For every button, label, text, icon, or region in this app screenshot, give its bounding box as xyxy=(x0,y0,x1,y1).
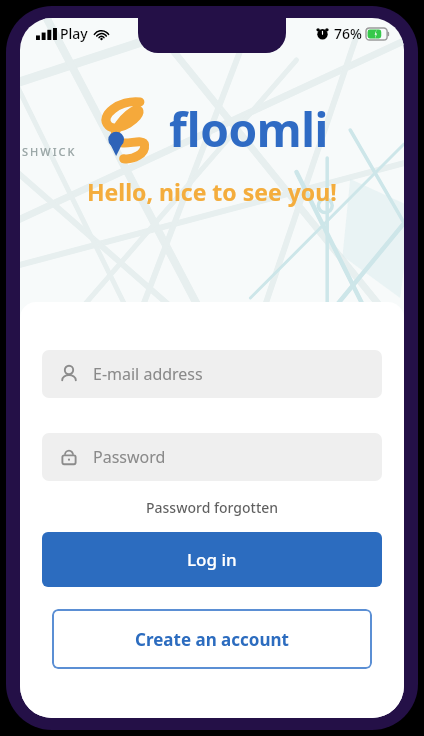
staticText: Hello, nice to see you! xyxy=(87,176,337,207)
button[interactable]: Log in xyxy=(42,532,382,587)
staticText: 76% xyxy=(334,24,362,43)
button[interactable]: Password xyxy=(42,433,382,481)
staticText: E-mail address xyxy=(93,363,203,385)
button[interactable]: Create an account xyxy=(52,609,372,669)
staticText: SHWICK xyxy=(22,144,77,159)
staticText: Password xyxy=(93,446,166,468)
staticText: Create an account xyxy=(135,628,289,651)
staticText: Password forgotten xyxy=(146,498,279,517)
staticText: Play xyxy=(60,24,88,43)
button[interactable]: Password forgotten xyxy=(42,494,382,521)
button[interactable]: E-mail address xyxy=(42,350,382,398)
staticText: floomli xyxy=(169,98,328,161)
staticText: Log in xyxy=(187,548,237,571)
